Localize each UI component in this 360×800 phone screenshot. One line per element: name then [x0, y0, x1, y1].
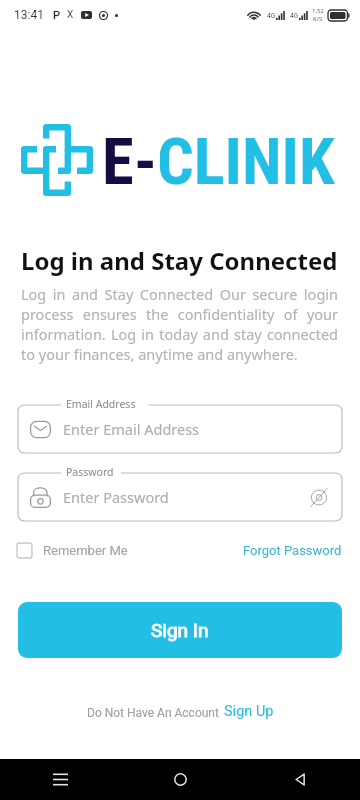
staticText: P — [53, 9, 60, 22]
button[interactable]: Forgot Password — [243, 543, 342, 558]
staticText: Email Address — [66, 397, 136, 411]
button[interactable]: Home — [120, 759, 240, 800]
staticText: 1,52 — [312, 7, 324, 15]
staticText: Enter Password — [63, 487, 169, 507]
staticText: Enter Email Address — [63, 419, 200, 439]
staticText: 4G — [267, 12, 276, 20]
staticText: Sign Up — [224, 703, 274, 720]
staticText: 4G — [290, 12, 299, 20]
staticText: E- — [102, 124, 157, 200]
button[interactable]: Back — [240, 759, 360, 800]
staticText: 13:41 — [14, 8, 44, 22]
button[interactable]: Remember Me — [17, 543, 128, 558]
staticText: Do Not Have An Account — [87, 706, 219, 720]
button[interactable]: Sign In — [18, 602, 342, 658]
button[interactable]: Sign Up — [224, 703, 274, 720]
staticText: Log in and Stay Connected Our secure log… — [21, 284, 338, 364]
staticText: Forgot Password — [243, 543, 342, 558]
staticText: CLINIK — [157, 124, 335, 200]
staticText: X — [67, 9, 74, 21]
staticText: Password — [66, 465, 114, 479]
button[interactable]: Show password — [308, 486, 330, 508]
staticText: Remember Me — [43, 543, 128, 558]
staticText: K/S — [313, 15, 323, 23]
staticText: Log in and Stay Connected — [21, 244, 338, 277]
staticText: Sign In — [151, 619, 209, 641]
button[interactable]: Recent apps — [0, 759, 120, 800]
